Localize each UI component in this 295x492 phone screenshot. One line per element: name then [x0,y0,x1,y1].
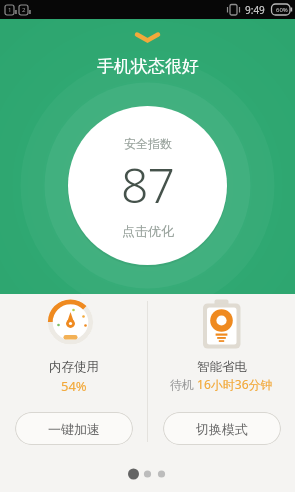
staticText: 手机状态很好 [97,56,199,77]
staticText: 切换模式 [196,421,248,437]
staticText: 内存使用 [49,359,99,375]
button[interactable]: 切换模式 [163,412,281,445]
staticText: 54% [61,377,87,395]
staticText: 智能省电 [197,359,247,375]
staticText: 9:49 [245,3,265,17]
staticText: 2 [22,6,26,14]
staticText: 1 [8,6,12,14]
staticText: 点击优化 [122,223,174,239]
staticText: 87 [121,152,174,205]
staticText: 待机 16小时36分钟 [170,376,273,392]
staticText: 安全指数 [124,136,172,151]
button[interactable]: 安全指数 [68,106,227,265]
staticText: 60% [276,6,288,14]
button[interactable]: 一键加速 [15,412,133,445]
staticText: 一键加速 [48,421,100,437]
